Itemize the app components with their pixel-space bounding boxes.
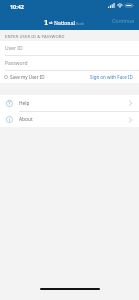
staticText: st xyxy=(49,20,53,25)
staticText: User ID xyxy=(5,45,23,52)
staticText: Help xyxy=(19,100,30,107)
staticText: Password xyxy=(5,60,28,67)
button[interactable]: Sign on with Face ID xyxy=(86,72,139,82)
staticText: Save my User ID xyxy=(10,74,45,80)
staticText: 1 xyxy=(44,17,49,27)
button[interactable]: Password xyxy=(0,56,139,70)
staticText: Continue xyxy=(112,17,135,24)
button[interactable]: About xyxy=(0,112,139,127)
button[interactable]: Help xyxy=(0,95,139,111)
staticText: About xyxy=(19,116,33,123)
staticText: 10:42 xyxy=(10,3,24,10)
staticText: Bank xyxy=(76,22,84,26)
staticText: National xyxy=(54,19,76,26)
staticText: Sign on with Face ID xyxy=(90,74,133,80)
button[interactable]: User ID xyxy=(0,41,139,55)
button[interactable]: Continue xyxy=(110,15,137,26)
staticText: ENTER USER ID & PASSWORD xyxy=(5,34,65,40)
button[interactable]: Save my User ID xyxy=(0,72,47,82)
